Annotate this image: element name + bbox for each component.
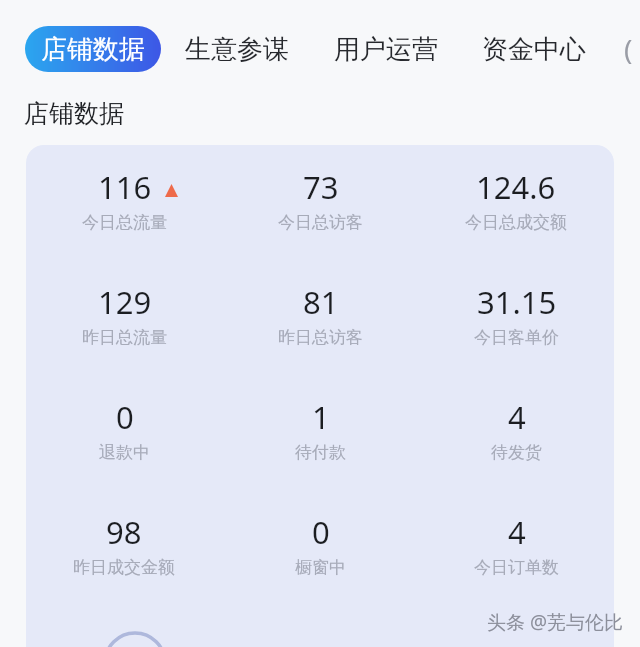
button[interactable]: 116 [76, 166, 173, 233]
staticText: 今日客单价 [474, 327, 559, 348]
button[interactable]: 用户运营 [332, 26, 440, 72]
staticText: 98 [106, 511, 142, 553]
button[interactable]: 31.15 [468, 281, 565, 348]
staticText: 4 [508, 396, 526, 438]
staticText: 昨日总访客 [278, 327, 363, 348]
staticText: 店铺数据 [24, 98, 124, 129]
staticText: 73 [303, 166, 339, 208]
staticText: 头条 @芜与伦比 [487, 609, 624, 635]
staticText: 退款中 [99, 442, 150, 463]
staticText: 店铺数据 [41, 33, 145, 66]
button[interactable]: 4 [485, 396, 548, 463]
button[interactable]: 生意参谋 [183, 26, 291, 72]
staticText: 4 [508, 511, 526, 553]
staticText: 昨日总流量 [82, 327, 167, 348]
staticText: 今日总访客 [278, 212, 363, 233]
staticText: 生意参谋 [185, 33, 289, 66]
button[interactable]: 0 [93, 396, 156, 463]
staticText: 1 [312, 396, 330, 438]
button[interactable]: 81 [272, 281, 369, 348]
staticText: 待付款 [295, 442, 346, 463]
staticText: 今日总流量 [82, 212, 167, 233]
button[interactable]: 店铺数据 [25, 26, 161, 72]
staticText: 31.15 [477, 281, 557, 323]
button[interactable]: 129 [76, 281, 173, 348]
staticText: 待发货 [491, 442, 542, 463]
staticText: 0 [312, 511, 330, 553]
other: Trending up [165, 184, 178, 197]
staticText: 资金中心 [482, 33, 586, 66]
staticText: 今日订单数 [474, 557, 559, 578]
staticText: 81 [303, 281, 339, 323]
button[interactable]: 4 [468, 511, 565, 578]
staticText: 用户运营 [334, 33, 438, 66]
staticText: ( [624, 30, 633, 68]
staticText: 0 [116, 396, 134, 438]
staticText: 橱窗中 [295, 557, 346, 578]
button[interactable]: 124.6 [459, 166, 573, 233]
button[interactable]: 1 [289, 396, 352, 463]
button[interactable]: 73 [272, 166, 369, 233]
button[interactable]: 98 [67, 511, 181, 578]
staticText: 今日总成交额 [465, 212, 567, 233]
button[interactable]: 0 [289, 511, 352, 578]
staticText: 129 [98, 281, 152, 323]
staticText: 昨日成交金额 [73, 557, 175, 578]
button[interactable]: 资金中心 [480, 26, 588, 72]
staticText: 124.6 [476, 166, 556, 208]
staticText: 116 [98, 166, 152, 208]
